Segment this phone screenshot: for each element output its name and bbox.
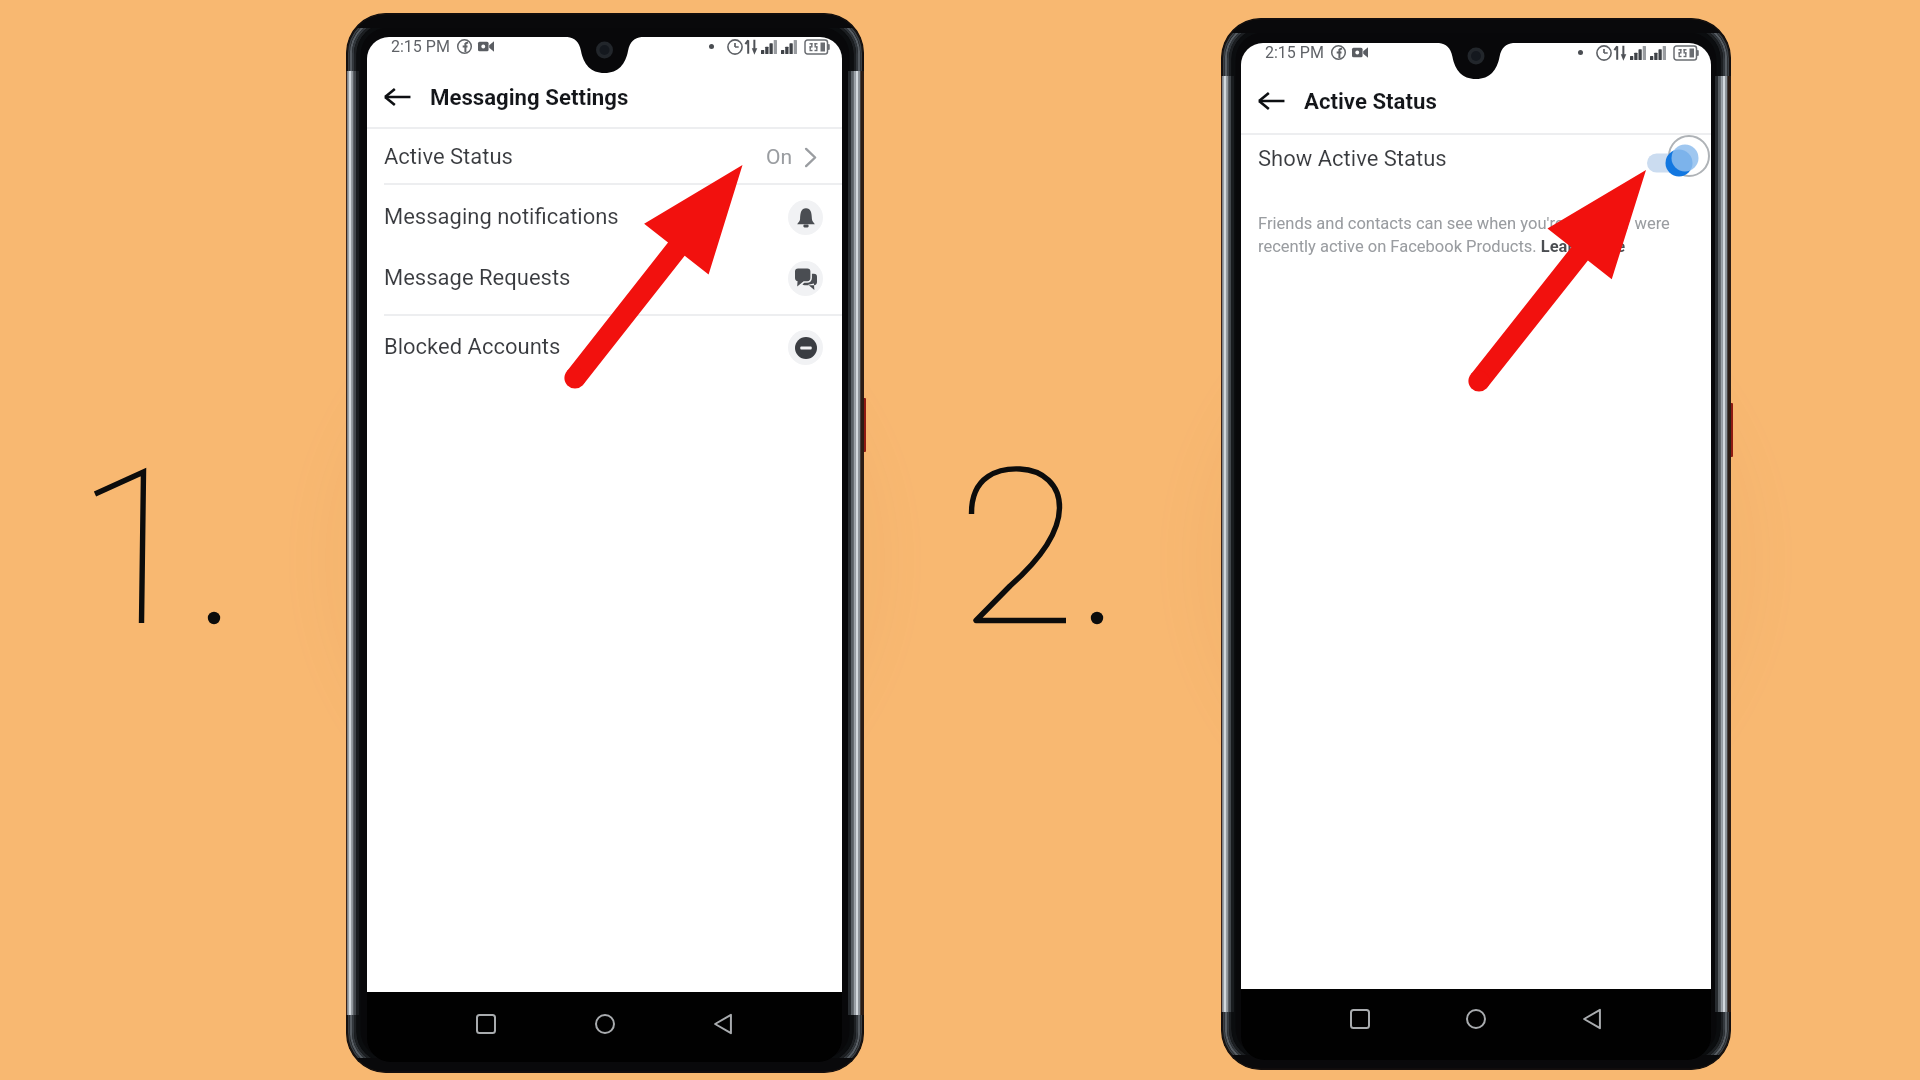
button[interactable]: Power — [1729, 403, 1733, 457]
staticText: recently active on Facebook Products. Le… — [1258, 237, 1626, 256]
button[interactable]: Back — [1570, 997, 1614, 1041]
staticText: Blocked Accounts — [384, 334, 561, 360]
button[interactable]: Message Requests — [367, 248, 842, 308]
button[interactable]: Home — [1454, 997, 1498, 1041]
staticText: Message Requests — [384, 265, 571, 291]
button[interactable]: Recents — [1338, 997, 1382, 1041]
staticText: On — [766, 145, 793, 170]
button[interactable]: Messaging notifications — [367, 187, 842, 247]
button[interactable]: Recents — [464, 1002, 508, 1046]
button[interactable]: Back — [1249, 79, 1293, 123]
button[interactable]: Blocked Accounts — [367, 317, 842, 377]
button[interactable]: Back — [375, 75, 419, 119]
staticText: 2:15 PM — [391, 37, 450, 56]
staticText: Active Status — [1304, 88, 1437, 114]
staticText: Messaging notifications — [384, 204, 619, 230]
staticText: 2:15 PM — [1265, 43, 1324, 62]
button[interactable]: Back — [701, 1002, 745, 1046]
staticText: Show Active Status — [1258, 146, 1447, 172]
staticText: Messaging Settings — [430, 84, 629, 110]
button[interactable]: Show Active Status — [1241, 129, 1711, 189]
staticText: Friends and contacts can see when you're… — [1258, 214, 1670, 233]
button[interactable]: Active Status — [367, 127, 842, 187]
button[interactable]: Show Active Status toggle — [1647, 131, 1711, 187]
staticText: Active Status — [384, 144, 513, 170]
button[interactable]: Power — [862, 398, 866, 452]
button[interactable]: Home — [583, 1002, 627, 1046]
